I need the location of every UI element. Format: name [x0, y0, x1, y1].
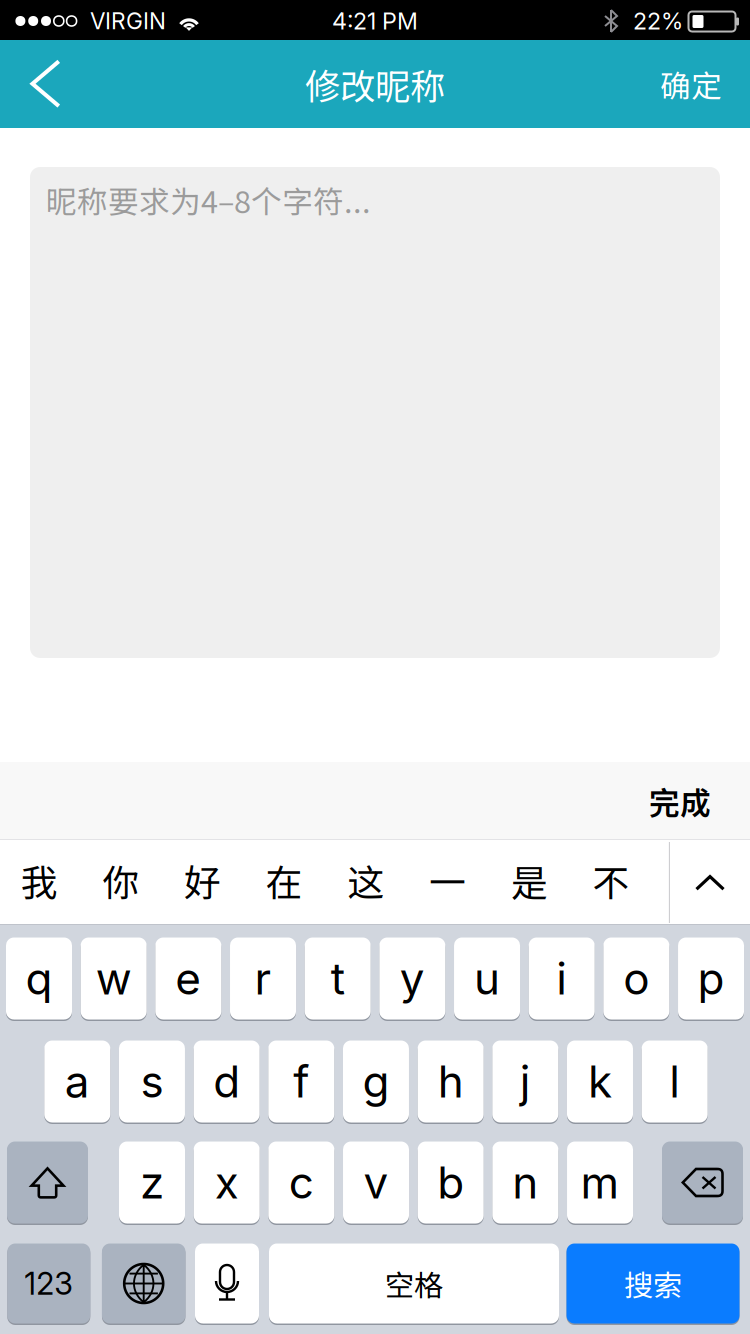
button[interactable]: b: [418, 1140, 484, 1225]
button[interactable]: v: [343, 1140, 409, 1225]
button[interactable]: m: [567, 1140, 633, 1225]
staticText: i: [556, 952, 567, 1005]
staticText: 空格: [385, 1262, 443, 1305]
staticText: o: [623, 952, 649, 1005]
staticText: h: [438, 1055, 464, 1108]
staticText: 好: [184, 854, 221, 907]
staticText: e: [175, 952, 201, 1005]
button[interactable]: y: [379, 936, 445, 1021]
staticText: w: [96, 952, 132, 1005]
staticText: c: [289, 1156, 314, 1209]
button[interactable]: [102, 1242, 185, 1325]
staticText: 是: [511, 854, 548, 907]
staticText: VIRGIN: [90, 7, 166, 35]
staticText: 22%: [633, 7, 683, 35]
button[interactable]: 在: [244, 838, 325, 922]
staticText: p: [697, 952, 724, 1005]
button[interactable]: q: [6, 936, 72, 1021]
button[interactable]: 我: [0, 838, 80, 922]
button[interactable]: g: [343, 1039, 409, 1124]
button[interactable]: 这: [325, 838, 406, 922]
staticText: m: [580, 1156, 619, 1209]
staticText: q: [25, 952, 52, 1005]
staticText: 完成: [649, 779, 711, 823]
button[interactable]: z: [119, 1140, 185, 1225]
staticText: j: [520, 1055, 531, 1108]
staticText: 你: [102, 854, 139, 907]
staticText: 一: [429, 854, 466, 907]
staticText: s: [140, 1055, 163, 1108]
button[interactable]: t: [305, 936, 371, 1021]
staticText: f: [293, 1055, 309, 1108]
staticText: 不: [593, 854, 630, 907]
staticText: z: [140, 1156, 164, 1209]
button[interactable]: c: [268, 1140, 334, 1225]
button[interactable]: 123: [7, 1242, 90, 1325]
staticText: 昵称要求为4–8个字符...: [46, 178, 371, 222]
button[interactable]: s: [119, 1039, 185, 1124]
button[interactable]: More candidates: [669, 841, 750, 925]
button[interactable]: [7, 1140, 88, 1225]
button[interactable]: u: [454, 936, 520, 1021]
button[interactable]: i: [529, 936, 595, 1021]
staticText: u: [474, 952, 500, 1005]
staticText: g: [362, 1055, 389, 1108]
staticText: 这: [347, 854, 384, 907]
button[interactable]: 确定: [632, 40, 750, 128]
button[interactable]: o: [603, 936, 669, 1021]
staticText: x: [215, 1156, 239, 1209]
button[interactable]: [195, 1242, 259, 1325]
staticText: a: [65, 1055, 90, 1108]
staticText: 我: [21, 854, 58, 907]
staticText: 确定: [660, 62, 722, 106]
button[interactable]: e: [155, 936, 221, 1021]
staticText: y: [400, 952, 425, 1005]
button[interactable]: a: [44, 1039, 110, 1124]
staticText: 在: [266, 854, 303, 907]
button[interactable]: [662, 1140, 743, 1225]
staticText: n: [512, 1156, 538, 1209]
staticText: 修改昵称: [305, 58, 445, 110]
button[interactable]: 是: [489, 838, 570, 922]
button[interactable]: p: [678, 936, 744, 1021]
button[interactable]: n: [492, 1140, 558, 1225]
staticText: 4:21 PM: [332, 7, 418, 35]
staticText: k: [588, 1055, 612, 1108]
staticText: r: [254, 952, 271, 1005]
button[interactable]: 完成: [615, 762, 745, 840]
staticText: d: [213, 1055, 240, 1108]
button[interactable]: k: [567, 1039, 633, 1124]
button[interactable]: x: [194, 1140, 260, 1225]
button[interactable]: 不: [571, 838, 652, 922]
button[interactable]: w: [81, 936, 147, 1021]
staticText: 123: [24, 1265, 73, 1302]
staticText: 搜索: [624, 1262, 682, 1305]
button[interactable]: 好: [162, 838, 243, 922]
button[interactable]: l: [642, 1039, 708, 1124]
button[interactable]: 一: [407, 838, 488, 922]
button[interactable]: 搜索: [566, 1242, 739, 1325]
button[interactable]: 空格: [269, 1242, 559, 1325]
staticText: t: [331, 952, 345, 1005]
button[interactable]: r: [230, 936, 296, 1021]
button[interactable]: j: [492, 1039, 558, 1124]
staticText: v: [363, 1156, 388, 1209]
button[interactable]: f: [268, 1039, 334, 1124]
button[interactable]: 昵称要求为4–8个字符...: [30, 167, 720, 658]
staticText: l: [669, 1055, 680, 1108]
staticText: b: [437, 1156, 464, 1209]
button[interactable]: Back: [0, 40, 96, 128]
button[interactable]: 你: [80, 838, 161, 922]
button[interactable]: h: [418, 1039, 484, 1124]
button[interactable]: d: [194, 1039, 260, 1124]
